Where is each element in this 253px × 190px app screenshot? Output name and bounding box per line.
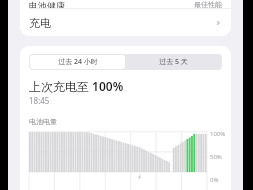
staticText: 50%	[210, 153, 222, 161]
staticText: 最佳性能	[194, 0, 222, 8]
staticText: 18:45	[29, 95, 50, 106]
staticText: 0%	[210, 176, 219, 184]
staticText: 充电	[29, 16, 51, 30]
staticText: 过去 24 小时	[58, 57, 98, 67]
other: 打开充电	[214, 19, 222, 27]
button[interactable]: 过去 24 小时	[30, 55, 125, 69]
staticText: 电池电量	[29, 117, 57, 126]
staticText: 过去 5 天	[159, 57, 188, 67]
staticText: 上次充电至 100%	[29, 78, 124, 94]
staticText: 电池健康	[29, 0, 65, 8]
button[interactable]: 过去 5 天	[125, 55, 221, 69]
staticText: 100%	[210, 130, 226, 138]
button[interactable]: 充电	[20, 9, 231, 36]
button[interactable]: 电池健康	[20, 0, 231, 8]
